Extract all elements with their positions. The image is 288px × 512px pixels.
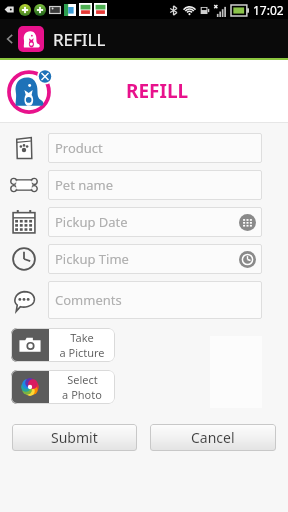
staticText: REFILL <box>53 28 106 51</box>
button[interactable]: Take <box>11 328 115 362</box>
button[interactable]: Pickup Time <box>48 244 262 274</box>
staticText: Product <box>55 139 103 157</box>
staticText: Comments <box>55 291 122 309</box>
button[interactable]: Submit <box>12 424 137 451</box>
staticText: Pet name <box>55 176 114 194</box>
staticText: Pickup Date <box>55 213 128 231</box>
button[interactable]: Select <box>11 370 115 404</box>
staticText: Cancel <box>191 428 235 447</box>
staticText: a Photo <box>62 387 102 402</box>
button[interactable]: Back <box>3 24 16 54</box>
staticText: Take <box>70 330 94 345</box>
staticText: 17:02 <box>253 2 284 18</box>
staticText: a Picture <box>59 345 105 360</box>
button[interactable]: App icon <box>18 26 44 52</box>
button[interactable]: Product <box>48 133 262 163</box>
staticText: Select <box>67 372 98 387</box>
staticText: Pickup Time <box>55 250 129 268</box>
staticText: REFILL <box>126 78 189 104</box>
button[interactable]: Comments <box>48 281 262 319</box>
button[interactable]: Pet name <box>48 170 262 200</box>
button[interactable]: Cancel <box>150 424 276 451</box>
button[interactable]: Pickup Date <box>48 207 262 237</box>
staticText: Submit <box>51 428 98 447</box>
